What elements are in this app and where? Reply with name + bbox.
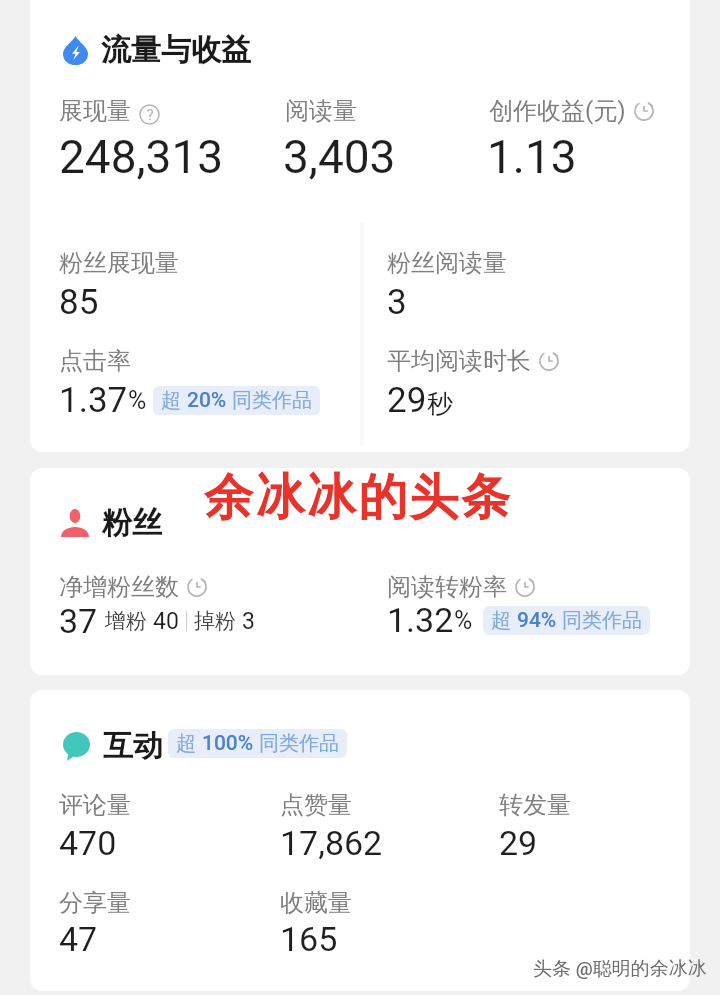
staticText: 点击率 [59, 346, 131, 376]
staticText: 470 [59, 823, 117, 863]
staticText: 互动 [103, 727, 163, 765]
staticText: 掉粉 [194, 608, 236, 634]
staticText: 94% [517, 608, 557, 633]
staticText: 收藏量 [280, 888, 352, 918]
staticText: 粉丝阅读量 [387, 248, 507, 278]
staticText: % [454, 606, 473, 635]
staticText: 20% [187, 388, 227, 413]
staticText: 创作收益(元) [489, 96, 626, 126]
other: Refresh [187, 577, 207, 597]
staticText: 165 [280, 919, 338, 959]
staticText: 超 [491, 608, 511, 633]
staticText: 粉丝 [102, 504, 162, 542]
other: Traffic [63, 36, 88, 65]
staticText: 超 [176, 731, 196, 756]
staticText: 1.13 [487, 130, 577, 184]
staticText: 248,313 [59, 130, 224, 184]
other: Interactions [63, 732, 90, 761]
staticText: 余冰冰的头条 [204, 467, 513, 529]
staticText: 展现量 [59, 96, 131, 126]
staticText: 40 [153, 608, 179, 635]
button[interactable]: 超 [153, 386, 320, 415]
staticText: 评论量 [59, 790, 131, 820]
staticText: 29 [387, 380, 427, 421]
staticText: 同类作品 [232, 388, 312, 413]
button[interactable]: Fans [61, 504, 162, 542]
button[interactable]: 超 [168, 729, 347, 758]
staticText: 29 [499, 823, 538, 863]
staticText: 同类作品 [562, 608, 642, 633]
button[interactable]: 超 [483, 606, 650, 635]
staticText: 增粉 [105, 608, 147, 634]
staticText: 点赞量 [280, 790, 352, 820]
other: Refresh [634, 101, 654, 121]
staticText: 粉丝展现量 [59, 248, 179, 278]
other: Help [139, 104, 160, 125]
staticText: 阅读量 [285, 96, 357, 126]
staticText: ? [146, 106, 154, 124]
staticText: 100% [202, 731, 254, 756]
staticText: 秒 [427, 388, 453, 421]
staticText: 17,862 [280, 823, 383, 863]
staticText: 超 [161, 388, 181, 413]
staticText: 1.32 [387, 600, 454, 640]
other: Refresh [515, 577, 535, 597]
button[interactable]: Traffic [63, 31, 251, 69]
staticText: 37 [59, 601, 98, 641]
staticText: 同类作品 [259, 731, 339, 756]
staticText: 1.37 [59, 380, 128, 421]
button[interactable]: Interactions [63, 727, 347, 765]
staticText: 3,403 [283, 130, 396, 184]
staticText: 流量与收益 [101, 31, 251, 69]
staticText: 平均阅读时长 [387, 346, 531, 376]
staticText: % [128, 386, 147, 415]
staticText: 转发量 [499, 790, 571, 820]
staticText: 47 [59, 919, 98, 959]
staticText: 85 [59, 282, 99, 323]
staticText: 3 [387, 282, 407, 323]
other: Refresh [539, 351, 559, 371]
staticText: 净增粉丝数 [59, 572, 179, 602]
staticText: 3 [242, 608, 255, 635]
staticText: 阅读转粉率 [387, 572, 507, 602]
staticText: 头条 @聪明的余冰冰 [533, 957, 707, 981]
other: Fans [61, 509, 89, 537]
staticText: 分享量 [59, 888, 131, 918]
